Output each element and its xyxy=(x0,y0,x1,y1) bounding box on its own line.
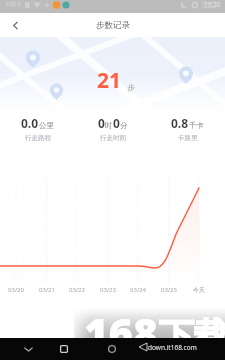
staticText: 公里 xyxy=(39,121,54,130)
staticText: 千卡 xyxy=(189,121,204,130)
staticText: 03/23 xyxy=(97,286,119,294)
staticText: 0 xyxy=(98,115,105,131)
staticText: 03/21 xyxy=(36,286,58,294)
staticText: 19:22 xyxy=(204,0,221,9)
staticText: 分 xyxy=(120,121,128,130)
staticText: 0 xyxy=(113,115,120,131)
staticText: 下载 xyxy=(159,314,225,358)
button[interactable]: Recents xyxy=(97,338,127,360)
staticText: 行走时间 xyxy=(100,134,126,142)
staticText: 今天 xyxy=(188,286,210,294)
staticText: 行走路程 xyxy=(25,134,51,142)
staticText: 21 xyxy=(97,66,122,95)
staticText: 卡路里 xyxy=(178,134,198,142)
staticText: 时 xyxy=(105,121,113,130)
staticText: down.it168.com xyxy=(148,343,197,352)
staticText: 0.0 xyxy=(21,115,39,131)
button[interactable]: Back xyxy=(13,338,43,360)
staticText: 03/25 xyxy=(158,286,180,294)
button[interactable]: Home xyxy=(49,338,79,360)
staticText: 步 xyxy=(127,83,135,92)
staticText: 03/22 xyxy=(66,286,88,294)
staticText: 03/24 xyxy=(127,286,149,294)
staticText: 0.8 xyxy=(171,115,189,131)
button[interactable]: Back xyxy=(0,13,30,37)
staticText: 步数记录 xyxy=(96,20,130,31)
staticText: 168 xyxy=(84,304,158,360)
staticText: 未插卡 xyxy=(5,1,22,8)
staticText: 03/20 xyxy=(5,286,27,294)
